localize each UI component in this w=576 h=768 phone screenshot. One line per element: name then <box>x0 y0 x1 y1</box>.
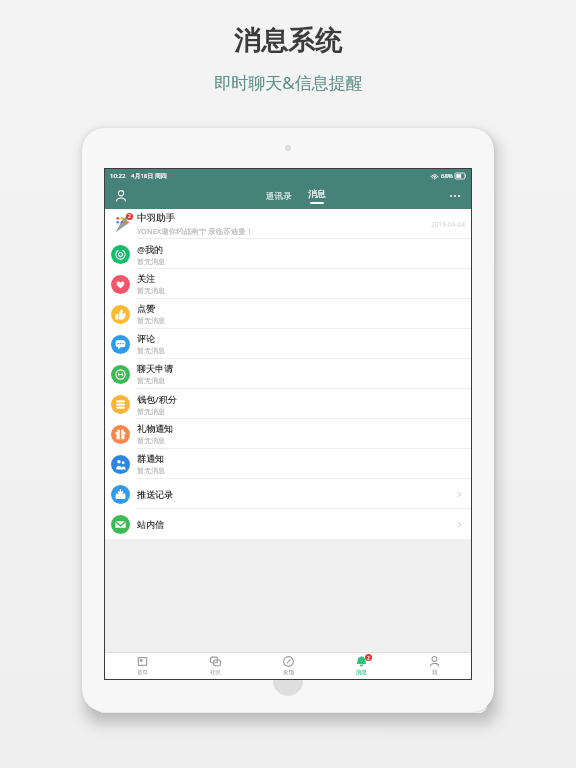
button[interactable]: 2 <box>105 209 471 239</box>
staticText: 社区 <box>210 669 221 676</box>
staticText: 暂无消息 <box>137 316 165 325</box>
staticText: 消息系统 <box>234 24 342 58</box>
staticText: 10:22 <box>110 172 126 180</box>
staticText: 暂无消息 <box>137 407 165 416</box>
staticText: 首页 <box>137 669 148 676</box>
staticText: 68% <box>441 172 453 180</box>
button[interactable]: 钱包/积分 <box>105 389 471 419</box>
staticText: 群通知 <box>137 453 164 464</box>
staticText: 暂无消息 <box>137 466 165 475</box>
button[interactable]: 消息 <box>302 187 332 205</box>
button[interactable]: 关注 <box>105 269 471 299</box>
staticText: @我的 <box>137 243 164 255</box>
button[interactable]: 评论 <box>105 329 471 359</box>
staticText: 聊天申请 <box>137 363 173 374</box>
button[interactable]: 首页 <box>105 653 179 679</box>
staticText: 2 <box>367 655 370 661</box>
staticText: 中羽助手 <box>137 212 175 224</box>
staticText: 4月18日 周四 <box>131 172 167 180</box>
button[interactable]: 礼物通知 <box>105 419 471 449</box>
button[interactable]: 站内信 <box>105 509 471 539</box>
button[interactable]: More options <box>445 186 465 206</box>
staticText: 暂无消息 <box>137 286 165 295</box>
button[interactable]: 我 <box>398 653 471 679</box>
staticText: YONEX邀你约战南宁 亲临苏迪曼！ <box>137 226 254 236</box>
staticText: 礼物通知 <box>137 423 173 434</box>
button[interactable]: 2 <box>325 653 398 679</box>
button[interactable]: Profile <box>111 186 131 206</box>
button[interactable]: 通讯录 <box>260 188 298 205</box>
button[interactable]: 社区 <box>179 653 252 679</box>
staticText: 暂无消息 <box>137 257 165 266</box>
button[interactable]: 发现 <box>252 653 325 679</box>
button[interactable]: 聊天申请 <box>105 359 471 389</box>
button[interactable]: 推送记录 <box>105 479 471 509</box>
button[interactable]: 群通知 <box>105 449 471 479</box>
staticText: 评论 <box>137 333 155 344</box>
button[interactable]: 点赞 <box>105 299 471 329</box>
staticText: 消息 <box>356 669 367 676</box>
staticText: 2 <box>128 213 131 220</box>
staticText: 站内信 <box>137 519 164 530</box>
staticText: 消息 <box>308 188 326 199</box>
staticText: 我 <box>432 669 438 676</box>
staticText: 通讯录 <box>266 191 292 202</box>
button[interactable]: @我的 <box>105 239 471 269</box>
staticText: 发现 <box>283 669 294 676</box>
staticText: 推送记录 <box>137 489 173 500</box>
staticText: 点赞 <box>137 303 155 314</box>
staticText: 暂无消息 <box>137 346 165 355</box>
staticText: 暂无消息 <box>137 436 165 445</box>
staticText: 2019-04-04 <box>431 220 465 229</box>
staticText: 关注 <box>137 273 155 284</box>
staticText: 即时聊天&信息提醒 <box>214 71 363 94</box>
staticText: 暂无消息 <box>137 376 165 385</box>
staticText: 钱包/积分 <box>137 393 177 405</box>
